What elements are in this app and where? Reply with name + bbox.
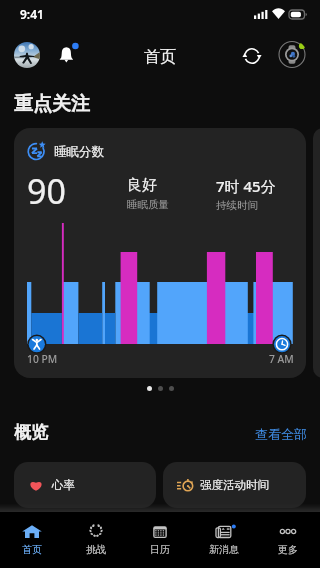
button[interactable]: 心率	[14, 462, 156, 508]
button[interactable]: Profile	[14, 42, 40, 68]
staticText: 睡眠质量	[127, 198, 169, 211]
staticText: 概览	[14, 422, 48, 443]
staticText: 良好	[127, 176, 157, 195]
staticText: 日历	[150, 543, 170, 556]
staticText: 挑战	[86, 543, 106, 556]
button[interactable]: 首页	[0, 512, 64, 568]
button[interactable]: Devices	[277, 40, 307, 70]
button[interactable]: 查看全部	[249, 423, 313, 445]
button[interactable]: 挑战	[64, 512, 128, 568]
staticText: 首页	[144, 47, 176, 67]
staticText: 7时 45分	[216, 176, 276, 196]
staticText: 心率	[52, 478, 75, 492]
staticText: 9:41	[20, 6, 44, 22]
staticText: 查看全部	[255, 426, 307, 442]
staticText: 持续时间	[216, 199, 258, 212]
button[interactable]: 日历	[128, 512, 192, 568]
staticText: 10 PM	[27, 352, 58, 366]
staticText: 强度活动时间	[200, 478, 269, 492]
button[interactable]: 强度活动时间	[163, 462, 306, 508]
staticText: 睡眠分数	[54, 144, 104, 160]
button[interactable]: 更多	[256, 512, 320, 568]
staticText: 新消息	[209, 543, 239, 556]
button[interactable]: Notifications	[53, 41, 81, 69]
staticText: 90	[27, 168, 66, 214]
button[interactable]: 新消息	[192, 512, 256, 568]
staticText: 首页	[22, 543, 42, 556]
button[interactable]: Sync	[236, 40, 267, 71]
button[interactable]: 睡眠分数	[14, 128, 306, 378]
staticText: 更多	[278, 543, 298, 556]
staticText: 7 AM	[269, 352, 294, 366]
staticText: 重点关注	[14, 92, 90, 116]
